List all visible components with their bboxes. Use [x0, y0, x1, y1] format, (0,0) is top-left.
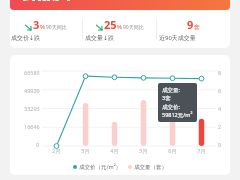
staticText: 成交价↓跌	[11, 34, 81, 42]
staticText: 2	[218, 123, 222, 130]
staticText: %	[117, 23, 122, 31]
button[interactable]: 66585	[10, 55, 230, 175]
staticText: 成交价:	[162, 103, 180, 111]
staticText: 33293	[24, 105, 40, 112]
button[interactable]: 下跌	[10, 17, 82, 42]
staticText: %	[40, 23, 45, 31]
staticText: 0	[36, 141, 40, 148]
staticText: 6	[218, 87, 222, 94]
staticText: 66585	[24, 69, 40, 76]
staticText: 8	[218, 69, 222, 76]
other: 下跌	[96, 24, 103, 31]
staticText: 7月	[187, 147, 216, 155]
button[interactable]: 59812	[10, 0, 230, 10]
staticText: 9	[187, 17, 194, 32]
staticText: 3月	[71, 147, 100, 155]
staticText: 90天同比	[123, 24, 144, 31]
staticText: 成交量（套）	[134, 164, 167, 171]
staticText: 4	[218, 105, 222, 112]
other: 下跌	[25, 24, 32, 31]
button[interactable]: 成交量:	[162, 86, 193, 119]
staticText: 16646	[24, 123, 40, 130]
staticText: 成交价（元/m²）	[79, 163, 122, 171]
staticText: 5月	[129, 147, 158, 155]
staticText: 3	[33, 17, 40, 32]
staticText: 成交量↓跌	[85, 34, 155, 42]
staticText: 成交量:	[162, 86, 180, 94]
staticText: 59812元/m²	[162, 111, 193, 119]
button[interactable]: 9	[157, 17, 230, 42]
staticText: 90天同比	[46, 24, 67, 31]
staticText: 2月	[42, 147, 71, 155]
staticText: 近90天成交量	[159, 34, 229, 42]
staticText: 套	[194, 23, 200, 31]
staticText: 0	[218, 141, 222, 148]
staticText: 25	[104, 17, 117, 32]
button[interactable]: 下跌	[83, 17, 156, 42]
staticText: 49939	[24, 87, 40, 94]
staticText: 6月	[158, 147, 187, 155]
staticText: 59812	[22, 0, 71, 1]
staticText: 3套	[162, 94, 171, 102]
staticText: 4月	[100, 147, 129, 155]
